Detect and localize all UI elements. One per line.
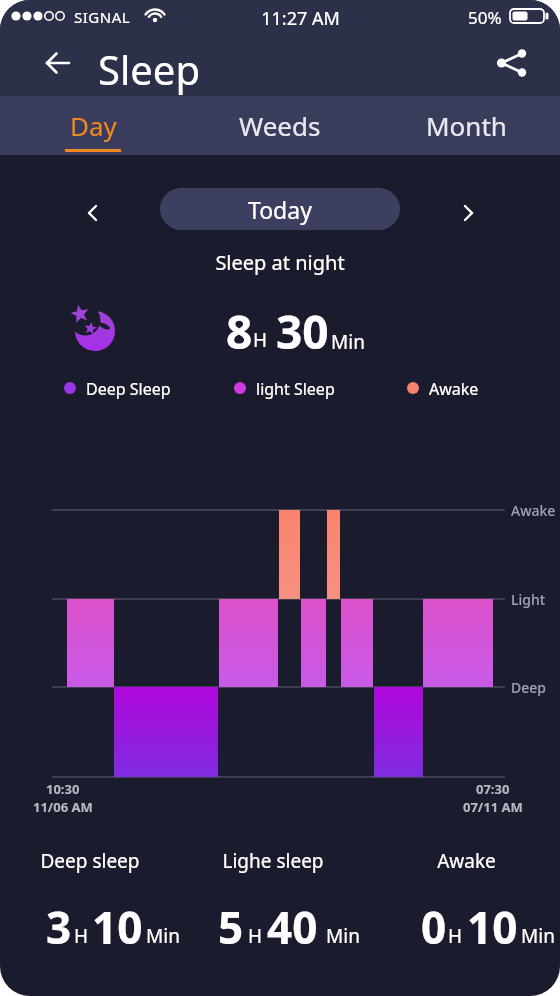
staticText: 0 [421, 897, 447, 957]
staticText: 07:30 [476, 780, 510, 798]
staticText: 30 [276, 300, 329, 363]
staticText: 11/06 AM [33, 798, 93, 816]
staticText: Sleep [98, 42, 200, 96]
staticText: H [253, 327, 268, 353]
staticText: 3 [46, 897, 72, 957]
button[interactable]: Today [160, 188, 400, 230]
staticText: SIGNAL [74, 7, 131, 27]
staticText: Light [511, 590, 546, 609]
staticText: 07/11 AM [463, 798, 523, 816]
staticText: 40 [267, 897, 318, 957]
button[interactable] [36, 43, 80, 83]
button[interactable] [74, 195, 110, 231]
staticText: 50% [468, 6, 502, 29]
staticText: Deep [511, 678, 546, 697]
staticText: 10:30 [46, 780, 80, 798]
staticText: Weeds [239, 108, 321, 143]
staticText: Lighe sleep [222, 848, 324, 874]
staticText: H [448, 923, 463, 949]
staticText: Deep Sleep [86, 378, 171, 400]
staticText: light Sleep [256, 378, 335, 400]
staticText: Awake [437, 848, 496, 874]
staticText: Min [331, 329, 365, 355]
button[interactable]: Month [373, 96, 560, 155]
staticText: Today [248, 194, 312, 225]
staticText: 10 [467, 897, 518, 957]
staticText: H [248, 923, 263, 949]
staticText: 10 [92, 897, 143, 957]
button[interactable] [489, 42, 535, 84]
button[interactable]: Day [0, 96, 186, 155]
staticText: Min [521, 923, 555, 949]
staticText: Min [326, 923, 360, 949]
staticText: 8 [226, 300, 253, 363]
staticText: Awake [429, 378, 479, 400]
staticText: Awake [511, 501, 556, 520]
staticText: 11:27 AM [261, 6, 340, 31]
staticText: 5 [218, 897, 244, 957]
staticText: Deep sleep [40, 848, 140, 874]
staticText: H [74, 923, 89, 949]
button[interactable]: Weeds [186, 96, 373, 155]
staticText: Day [70, 108, 117, 143]
button[interactable] [450, 195, 486, 231]
staticText: Sleep at night [215, 249, 345, 276]
staticText: Min [146, 923, 180, 949]
staticText: Month [426, 108, 507, 143]
